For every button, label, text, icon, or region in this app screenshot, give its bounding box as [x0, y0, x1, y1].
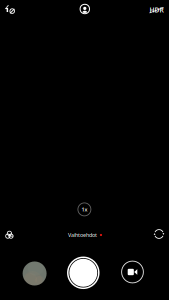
- staticText: HDR: [149, 6, 163, 14]
- button[interactable]: Photo library: [13, 251, 57, 295]
- button[interactable]: Video mode: [112, 252, 152, 292]
- button[interactable]: Switch camera: [147, 224, 169, 244]
- button[interactable]: Flash off: [0, 0, 22, 20]
- button[interactable]: Vaihtoehdot: [68, 225, 102, 245]
- button[interactable]: HDR off: [144, 0, 168, 21]
- button[interactable]: Zoom 1x: [74, 199, 94, 219]
- button[interactable]: Take photo: [61, 251, 105, 295]
- staticText: Vaihtoehdot: [68, 231, 97, 239]
- staticText: 1x: [81, 206, 87, 213]
- button[interactable]: Filters: [0, 225, 21, 245]
- button[interactable]: Portrait: [73, 0, 97, 20]
